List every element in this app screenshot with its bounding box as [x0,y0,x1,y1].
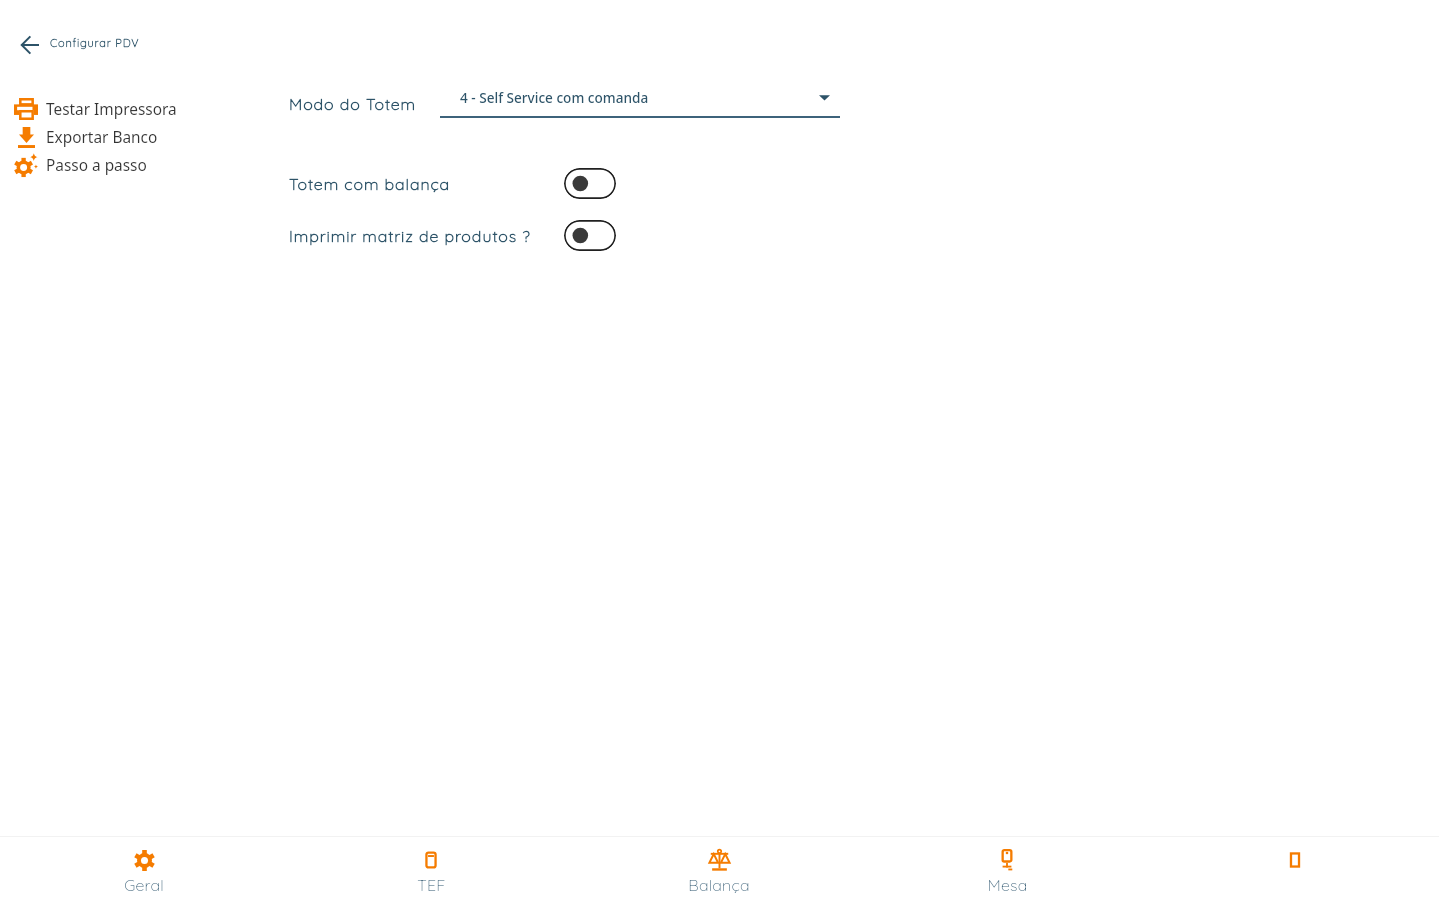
button[interactable]: Testar Impressora [12,95,177,123]
staticText: Exportar Banco [46,127,158,148]
staticText: Testar Impressora [46,99,177,120]
button[interactable]: Passo a passo [12,151,147,179]
button[interactable]: Mesa [863,836,1151,899]
staticText: Geral [124,875,164,895]
button[interactable]: Imprimir matriz de produtos ? [564,220,616,251]
button[interactable]: TEF [287,836,575,899]
staticText: Totem com balança [289,174,451,194]
staticText: Passo a passo [46,155,147,176]
button[interactable]: Voltar [13,28,47,62]
staticText: Balança [688,875,750,895]
staticText: Mesa [987,875,1028,895]
staticText: Configurar PDV [50,36,140,50]
button[interactable]: Geral [0,836,287,899]
button[interactable]: Totem com balança [564,168,616,199]
staticText: TEF [417,875,446,895]
button[interactable]: 4 - Self Service com comanda [440,88,840,118]
button[interactable]: Exportar Banco [12,123,158,151]
button[interactable]: Balança [575,836,863,899]
button[interactable]: Mais [1151,836,1439,899]
staticText: Modo do Totem [289,94,417,114]
staticText: Imprimir matriz de produtos ? [289,226,531,246]
staticText: 4 - Self Service com comanda [460,88,649,107]
